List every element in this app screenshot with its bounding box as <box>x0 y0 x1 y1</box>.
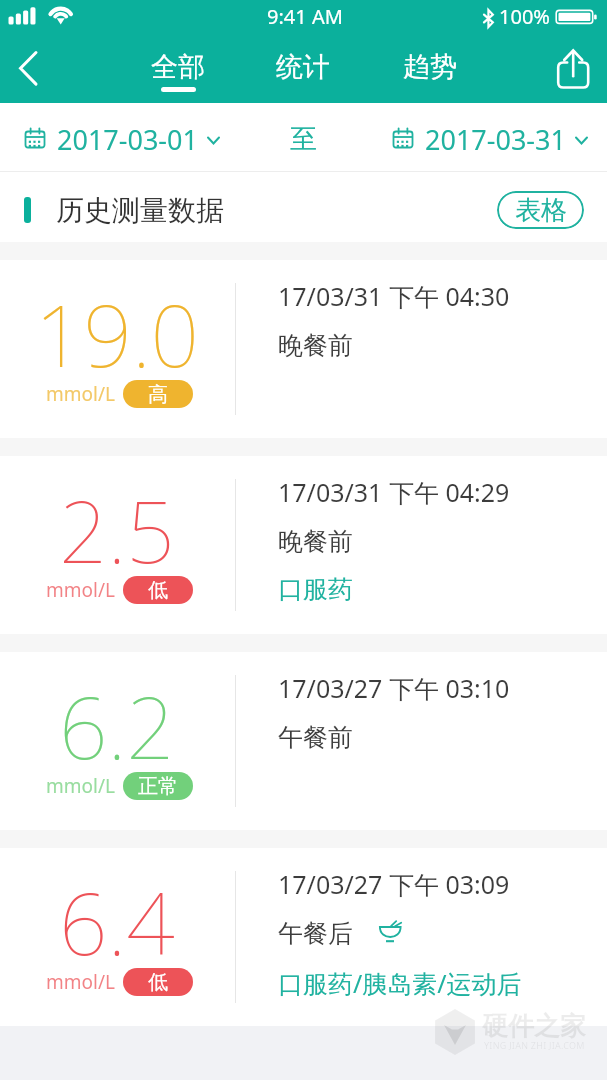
button[interactable]: 统计 <box>261 39 345 103</box>
button[interactable]: 6.4 <box>0 848 607 1026</box>
button[interactable]: 2.5 <box>0 456 607 634</box>
staticText: 2017-03-01 <box>57 121 198 158</box>
staticText: 晚餐前 <box>278 330 353 361</box>
staticText: 高 <box>148 382 168 407</box>
staticText: 9:41 AM <box>267 3 343 30</box>
staticText: 硬件之家 <box>482 1010 586 1043</box>
staticText: 2017-03-31 <box>425 121 566 158</box>
staticText: 6.2 <box>59 668 175 784</box>
staticText: 全部 <box>151 50 205 84</box>
button[interactable]: Share <box>546 42 604 100</box>
staticText: mmol/L <box>46 969 115 995</box>
staticText: 晚餐前 <box>278 526 353 557</box>
staticText: 正常 <box>138 774 178 799</box>
button[interactable]: 6.2 <box>0 652 607 830</box>
staticText: 2.5 <box>59 472 175 588</box>
button[interactable]: 19.0 <box>0 260 607 438</box>
staticText: 午餐后 <box>278 918 353 949</box>
button[interactable]: 2017-03-31 <box>384 111 597 167</box>
staticText: 17/03/31 下午 04:30 <box>278 279 510 313</box>
staticText: YING JIAN ZHI JIA.COM <box>484 1039 585 1051</box>
staticText: 口服药 <box>278 574 353 605</box>
staticText: mmol/L <box>46 381 115 407</box>
button[interactable]: Back <box>0 42 58 100</box>
staticText: 口服药/胰岛素/运动后 <box>278 966 522 1000</box>
staticText: 历史测量数据 <box>56 193 224 228</box>
button[interactable]: 趋势 <box>388 39 472 103</box>
staticText: 至 <box>290 122 317 156</box>
staticText: 6.4 <box>59 864 175 980</box>
button[interactable]: 2017-03-01 <box>16 111 229 167</box>
button[interactable]: 表格 <box>497 191 584 229</box>
staticText: 19.0 <box>35 276 200 392</box>
staticText: mmol/L <box>46 577 115 603</box>
staticText: 100% <box>499 3 550 30</box>
staticText: 统计 <box>276 50 330 84</box>
staticText: 低 <box>148 970 168 995</box>
staticText: mmol/L <box>46 773 115 799</box>
staticText: 趋势 <box>403 50 457 84</box>
button[interactable]: 全部 <box>136 39 220 103</box>
staticText: 17/03/31 下午 04:29 <box>278 475 510 509</box>
staticText: 午餐前 <box>278 722 353 753</box>
staticText: 17/03/27 下午 03:09 <box>278 867 510 901</box>
staticText: 17/03/27 下午 03:10 <box>278 671 510 705</box>
staticText: 表格 <box>515 194 567 227</box>
staticText: 低 <box>148 578 168 603</box>
